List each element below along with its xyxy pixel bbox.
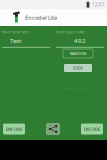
staticText: Insert your text: [2, 29, 28, 34]
staticText: 12:07: [92, 1, 105, 8]
staticText: RANDOM: [70, 51, 86, 56]
button[interactable]: RANDOM: [63, 49, 93, 58]
staticText: CODE: [73, 65, 83, 71]
staticText: Insert your code: [56, 29, 84, 34]
staticText: ENCODE: [6, 126, 22, 132]
button[interactable]: CODE: [64, 64, 92, 72]
staticText: 492: [74, 36, 86, 45]
staticText: DECODE: [84, 126, 100, 132]
button[interactable]: ENCODE: [3, 123, 25, 134]
staticText: Text: [10, 36, 21, 45]
button[interactable]: DECODE: [81, 123, 103, 134]
staticText: Encoder Lite: [25, 14, 57, 21]
button[interactable]: Share: [46, 123, 60, 135]
